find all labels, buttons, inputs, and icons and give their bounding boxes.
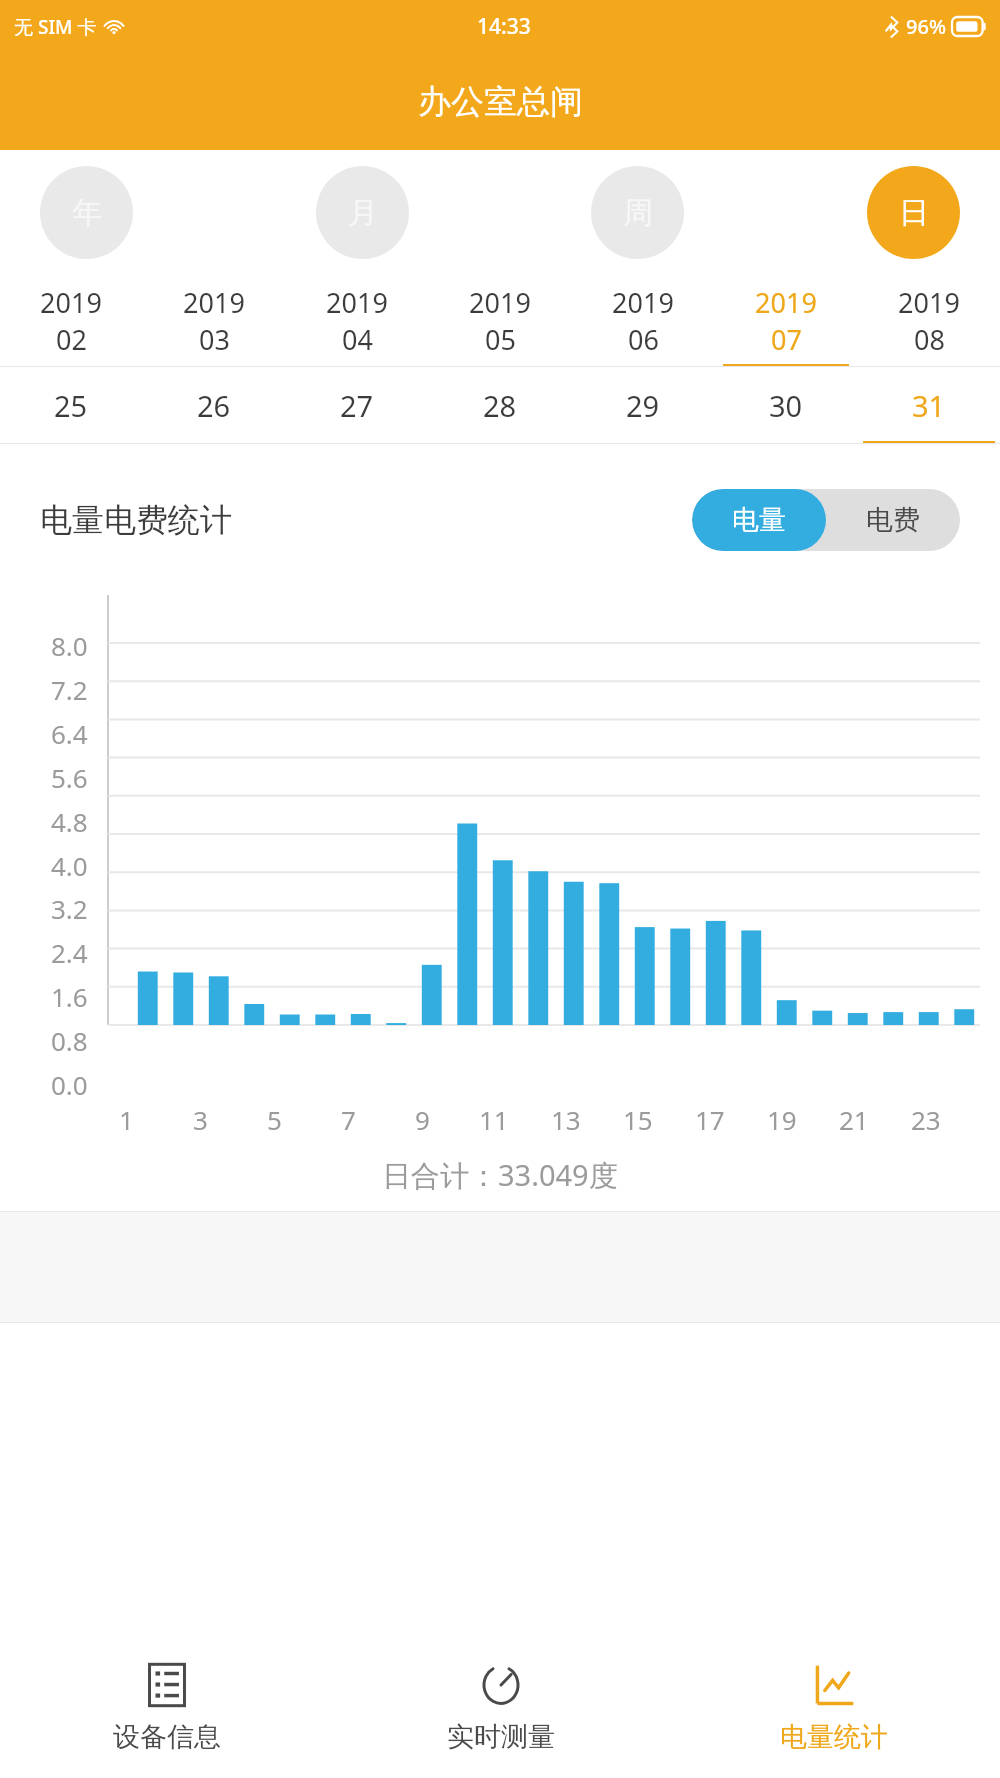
button[interactable]: 27 — [285, 367, 428, 444]
button[interactable]: 年 — [40, 166, 133, 259]
staticText: 25 — [54, 386, 88, 425]
staticText: 实时测量 — [447, 1720, 555, 1754]
staticText: 年 — [72, 194, 102, 232]
staticText: 7 — [341, 1102, 356, 1137]
staticText: 4.0 — [51, 848, 88, 883]
staticText: 03 — [199, 321, 230, 358]
staticText: 电费 — [866, 503, 920, 537]
staticText: 1.6 — [51, 979, 88, 1014]
button[interactable]: 月 — [316, 166, 409, 259]
button[interactable]: 29 — [571, 367, 714, 444]
button[interactable]: 设备信息 — [0, 1638, 334, 1778]
staticText: 21 — [839, 1102, 869, 1137]
button[interactable]: 28 — [428, 367, 571, 444]
staticText: 无 SIM 卡 — [14, 14, 97, 40]
staticText: 日合计：33.049度 — [382, 1155, 618, 1195]
staticText: 08 — [914, 321, 945, 358]
button[interactable]: 2019 — [714, 275, 857, 367]
staticText: 8.0 — [51, 628, 88, 663]
button[interactable]: 2019 — [142, 275, 285, 367]
staticText: 28 — [483, 386, 517, 425]
staticText: 27 — [340, 386, 374, 425]
button[interactable]: 日 — [867, 166, 960, 259]
staticText: 17 — [695, 1102, 725, 1137]
staticText: 日 — [899, 194, 929, 232]
staticText: 96% — [906, 13, 946, 40]
staticText: 04 — [342, 321, 373, 358]
staticText: 2019 — [755, 284, 817, 321]
staticText: 2.4 — [51, 935, 88, 970]
staticText: 办公室总闸 — [418, 81, 583, 123]
staticText: 30 — [769, 386, 803, 425]
staticText: 2019 — [898, 284, 960, 321]
staticText: 4.8 — [51, 804, 88, 839]
staticText: 05 — [485, 321, 516, 358]
staticText: 5 — [267, 1102, 282, 1137]
staticText: 2019 — [612, 284, 674, 321]
staticText: 设备信息 — [113, 1720, 221, 1754]
button[interactable]: 2019 — [0, 275, 142, 367]
button[interactable]: 2019 — [285, 275, 428, 367]
staticText: 15 — [623, 1102, 653, 1137]
staticText: 6.4 — [51, 716, 88, 751]
staticText: 3 — [193, 1102, 208, 1137]
staticText: 电量统计 — [780, 1720, 888, 1754]
staticText: 1 — [119, 1102, 134, 1137]
button[interactable]: 30 — [714, 367, 857, 444]
staticText: 26 — [197, 386, 231, 425]
button[interactable]: 实时测量 — [334, 1638, 667, 1778]
staticText: 11 — [479, 1102, 509, 1137]
button[interactable]: 电费 — [826, 489, 960, 551]
staticText: 23 — [911, 1102, 941, 1137]
staticText: 29 — [626, 386, 660, 425]
staticText: 月 — [348, 194, 378, 232]
button[interactable]: 26 — [142, 367, 285, 444]
staticText: 0.0 — [51, 1067, 88, 1102]
staticText: 电量电费统计 — [40, 500, 232, 540]
button[interactable]: 2019 — [571, 275, 714, 367]
staticText: 02 — [56, 321, 87, 358]
staticText: 2019 — [183, 284, 245, 321]
staticText: 2019 — [40, 284, 102, 321]
staticText: 5.6 — [51, 760, 88, 795]
staticText: 0.8 — [51, 1023, 88, 1058]
staticText: 2019 — [469, 284, 531, 321]
staticText: 7.2 — [51, 672, 88, 707]
staticText: 31 — [912, 386, 946, 425]
staticText: 13 — [551, 1102, 581, 1137]
button[interactable]: 2019 — [428, 275, 571, 367]
button[interactable]: 25 — [0, 367, 142, 444]
button[interactable]: 电量统计 — [667, 1638, 1000, 1778]
button[interactable]: 周 — [591, 166, 684, 259]
staticText: 9 — [415, 1102, 430, 1137]
staticText: 14:33 — [477, 12, 531, 41]
staticText: 周 — [623, 194, 653, 232]
staticText: 19 — [767, 1102, 797, 1137]
button[interactable]: 电量 — [692, 489, 826, 551]
staticText: 2019 — [326, 284, 388, 321]
staticText: 06 — [628, 321, 659, 358]
staticText: 电量 — [732, 503, 786, 537]
staticText: 07 — [771, 321, 802, 358]
staticText: 3.2 — [51, 891, 88, 926]
button[interactable]: 31 — [857, 367, 1000, 444]
button[interactable]: 2019 — [857, 275, 1000, 367]
